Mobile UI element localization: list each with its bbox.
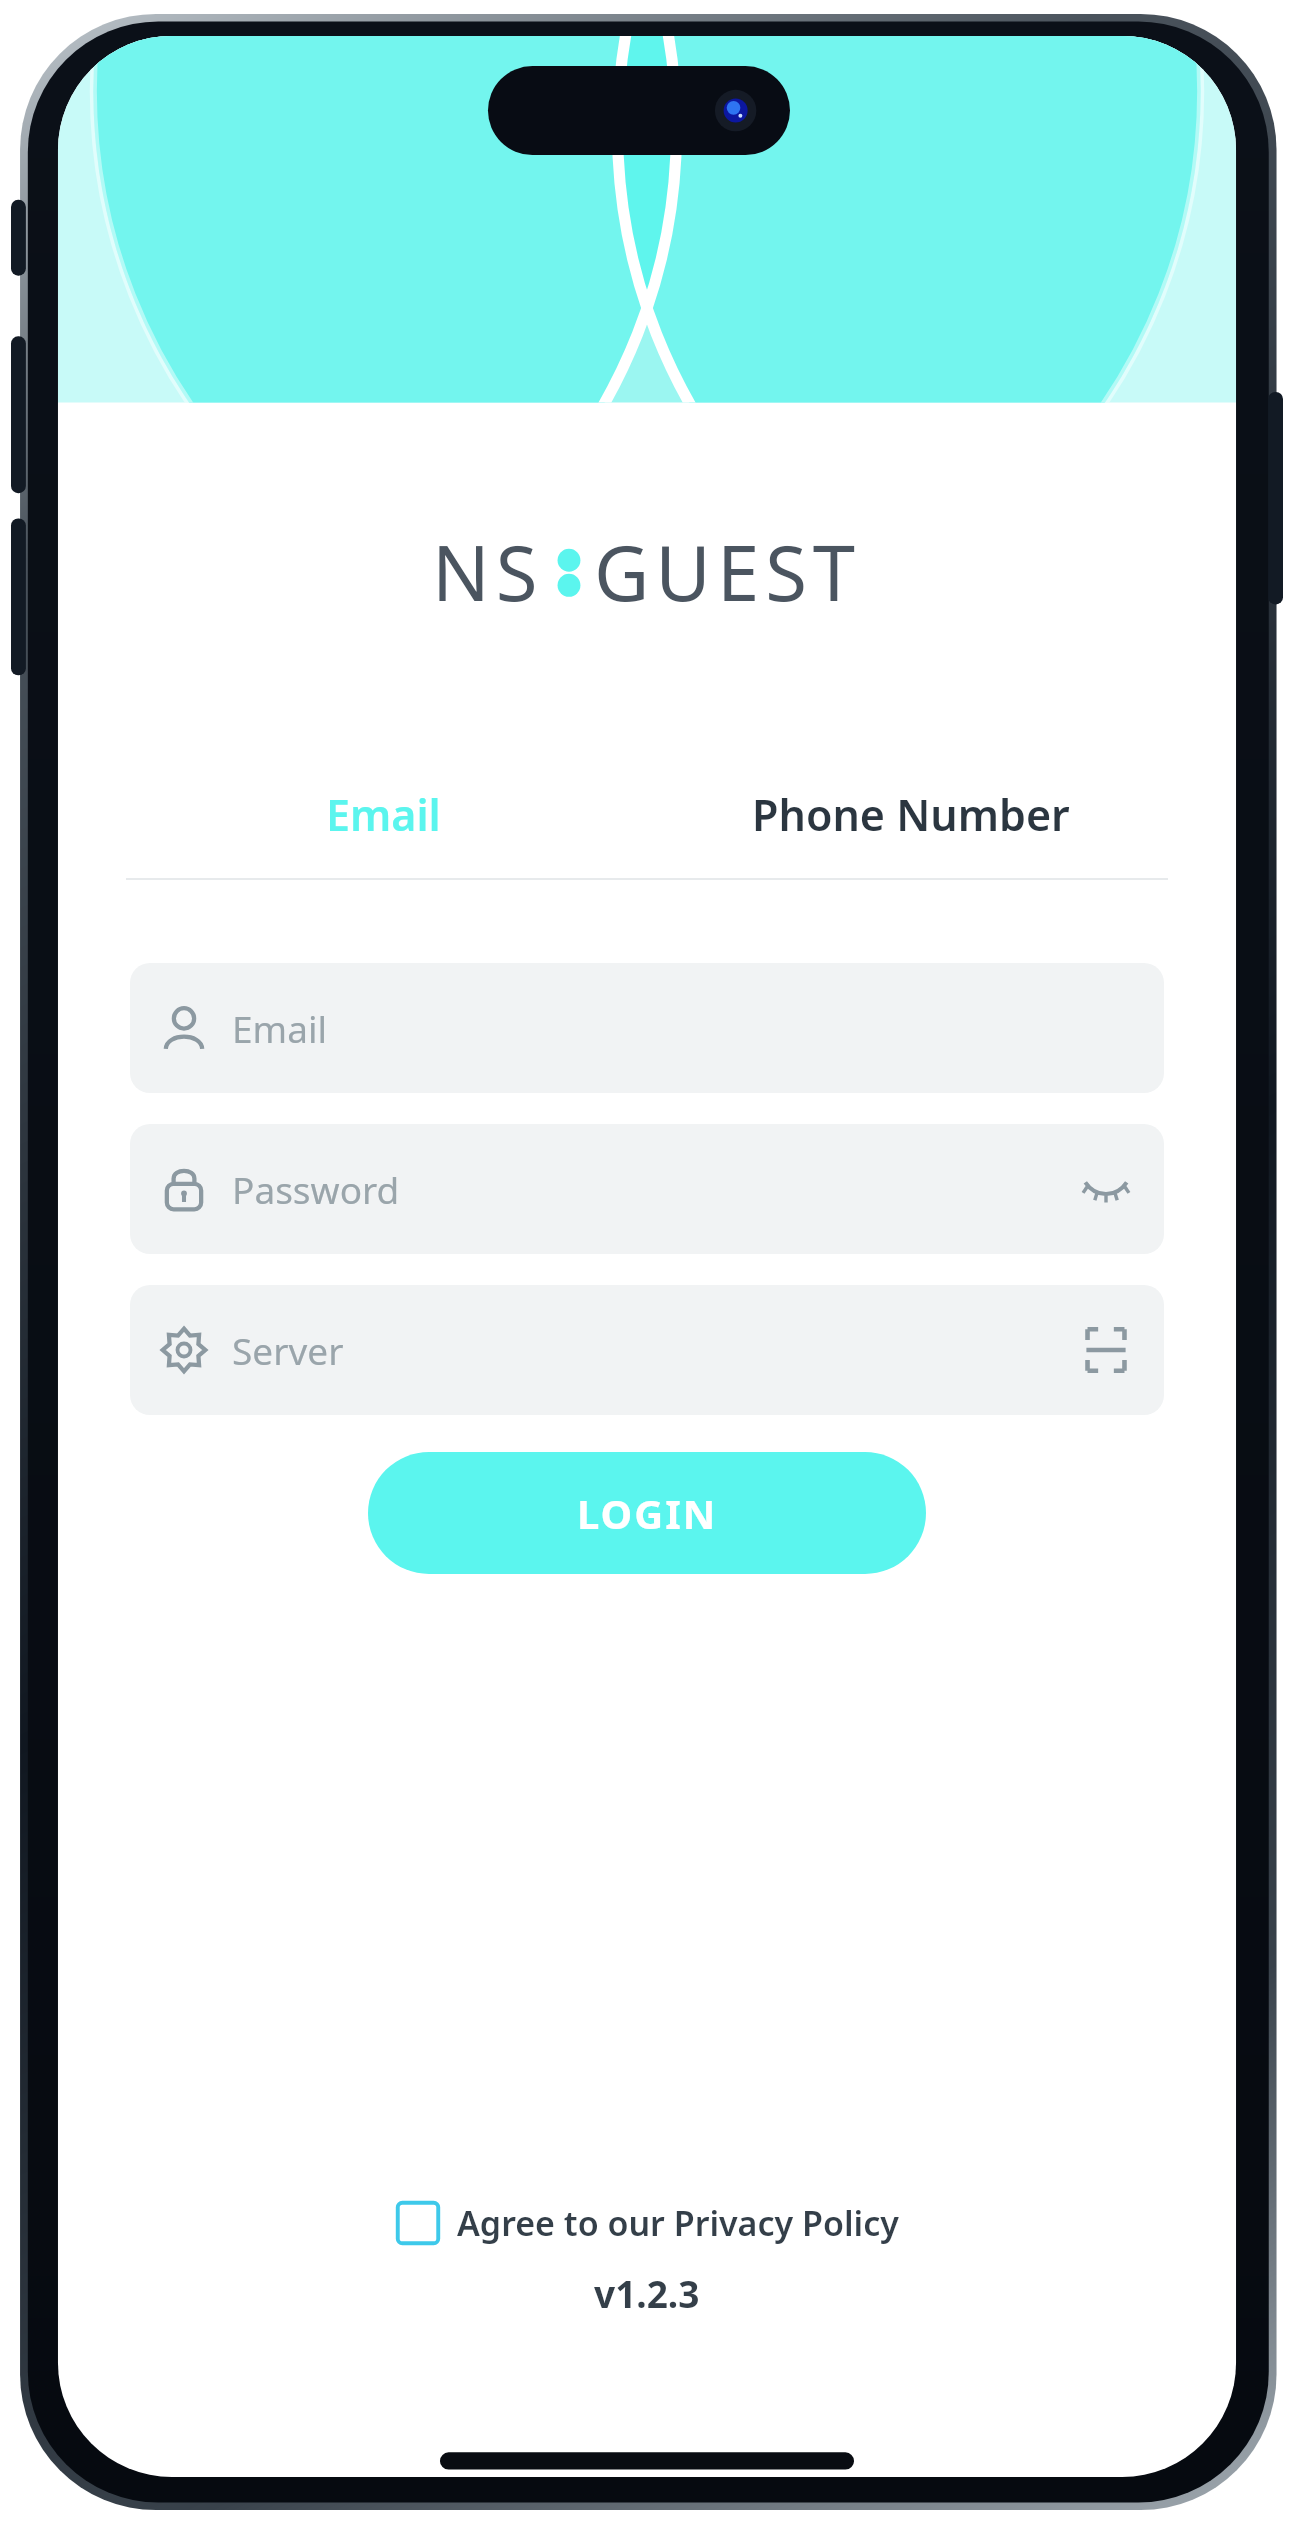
button[interactable]: Show password [1078, 1161, 1134, 1217]
staticText: Email [326, 785, 441, 844]
button[interactable]: Scan QR code [1078, 1322, 1134, 1378]
other: Agree to our Privacy Policy [395, 2200, 441, 2246]
button[interactable]: Email [130, 963, 1164, 1093]
staticText: LOGIN [577, 1486, 718, 1540]
staticText: v1.2.3 [594, 2268, 700, 2318]
staticText: Agree to our Privacy Policy [457, 2200, 899, 2246]
staticText: Server [232, 1325, 344, 1375]
staticText: NS [432, 520, 544, 624]
staticText: GUEST [594, 520, 862, 624]
button[interactable]: Phone Number [647, 758, 1174, 870]
staticText: Phone Number [752, 785, 1070, 844]
button[interactable]: LOGIN [368, 1452, 926, 1574]
button[interactable]: Agree to our Privacy Policy [395, 2200, 899, 2246]
button[interactable]: Email [120, 758, 647, 870]
button[interactable]: Password [130, 1124, 1164, 1254]
staticText: Password [232, 1164, 400, 1214]
button[interactable]: Server [130, 1285, 1164, 1415]
staticText: Email [232, 1003, 328, 1053]
